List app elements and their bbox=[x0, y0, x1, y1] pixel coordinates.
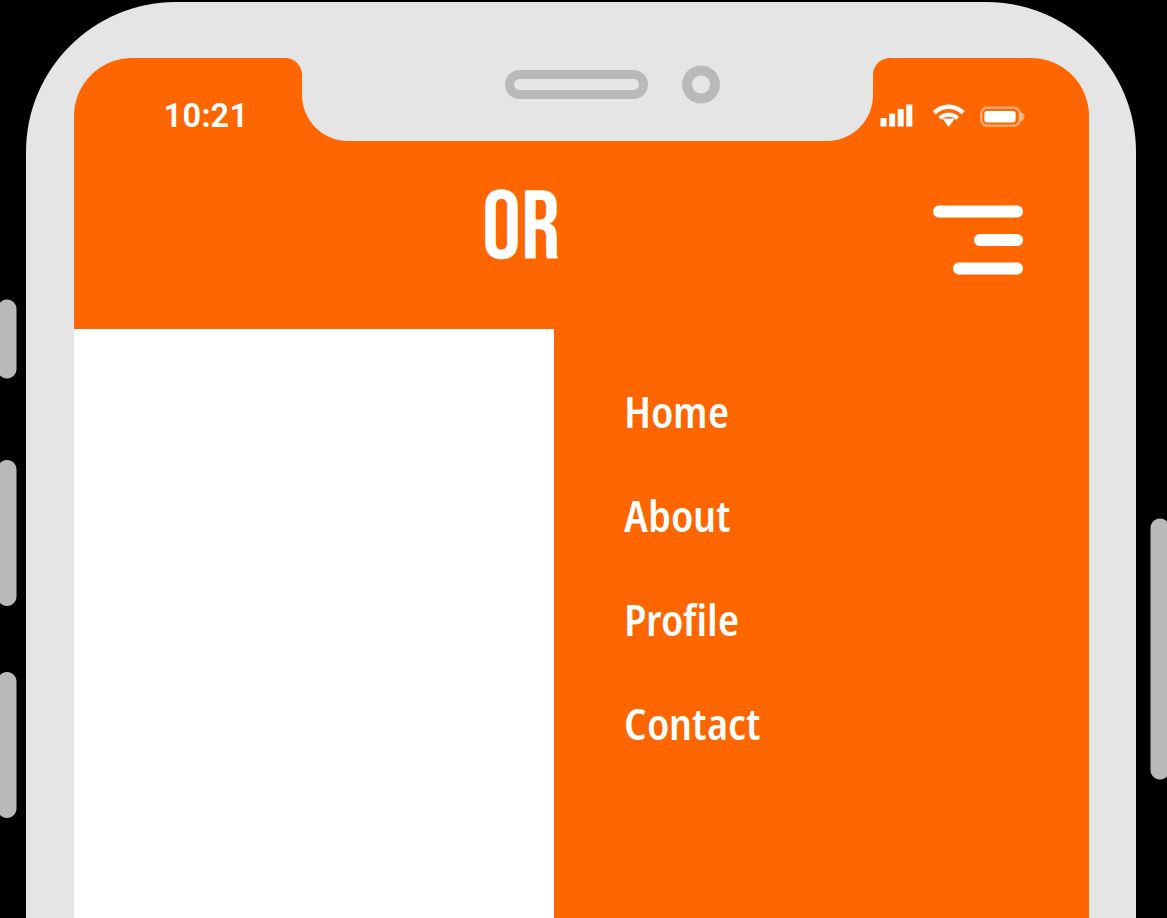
staticText: OR bbox=[482, 170, 560, 287]
button[interactable]: Profile bbox=[624, 567, 1086, 671]
staticText: Contact bbox=[624, 693, 761, 753]
staticText: Home bbox=[624, 381, 729, 441]
button[interactable]: Contact bbox=[624, 671, 1086, 775]
staticText: Profile bbox=[624, 589, 739, 649]
button[interactable]: Menu bbox=[899, 179, 1045, 300]
button[interactable]: Home bbox=[624, 359, 1086, 463]
staticText: 10:21 bbox=[163, 97, 248, 135]
staticText: About bbox=[624, 485, 731, 545]
button[interactable]: About bbox=[624, 463, 1086, 567]
